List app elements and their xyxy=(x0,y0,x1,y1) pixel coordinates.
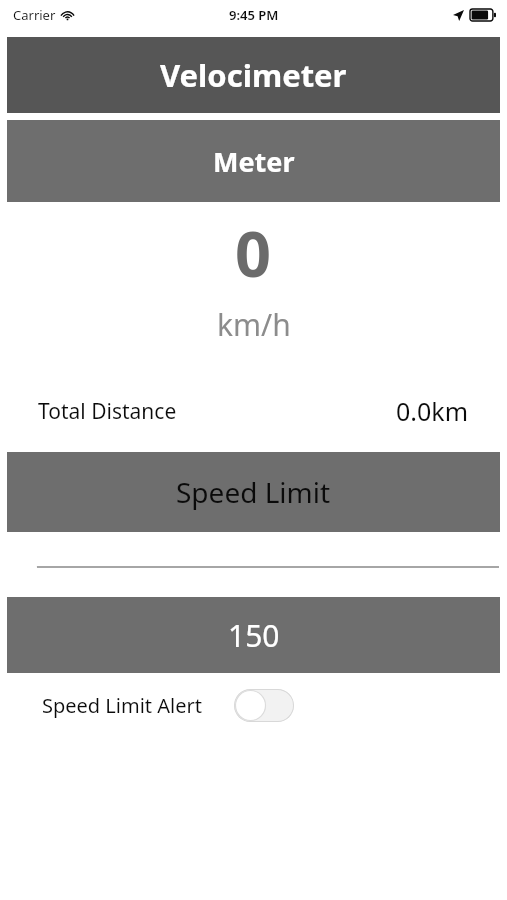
staticText: Carrier xyxy=(13,6,56,24)
staticText: km/h xyxy=(217,304,291,345)
staticText: Speed Limit Alert xyxy=(42,692,202,719)
button[interactable]: Meter xyxy=(7,120,500,202)
staticText: 9:45 PM xyxy=(229,6,279,24)
button[interactable]: 150 xyxy=(7,597,500,673)
button[interactable]: Speed limit slider xyxy=(8,546,499,588)
staticText: 150 xyxy=(228,615,280,656)
staticText: Total Distance xyxy=(38,397,177,426)
button[interactable]: Velocimeter xyxy=(7,37,500,113)
button[interactable]: Speed Limit xyxy=(7,452,500,532)
staticText: 0.0km xyxy=(396,394,469,428)
staticText: Speed Limit xyxy=(176,473,331,511)
staticText: 0 xyxy=(235,210,272,296)
staticText: Meter xyxy=(213,143,295,180)
button[interactable]: Speed Limit Alert toggle xyxy=(234,689,294,722)
staticText: Velocimeter xyxy=(160,54,347,96)
